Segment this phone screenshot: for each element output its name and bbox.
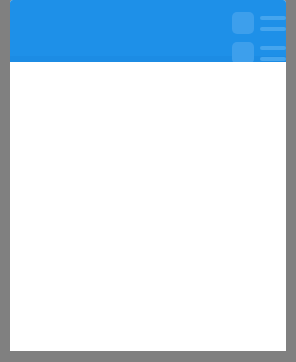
button[interactable]: App bar bbox=[10, 0, 286, 62]
button[interactable]: List item bbox=[232, 12, 286, 34]
button[interactable]: List item bbox=[232, 42, 286, 64]
